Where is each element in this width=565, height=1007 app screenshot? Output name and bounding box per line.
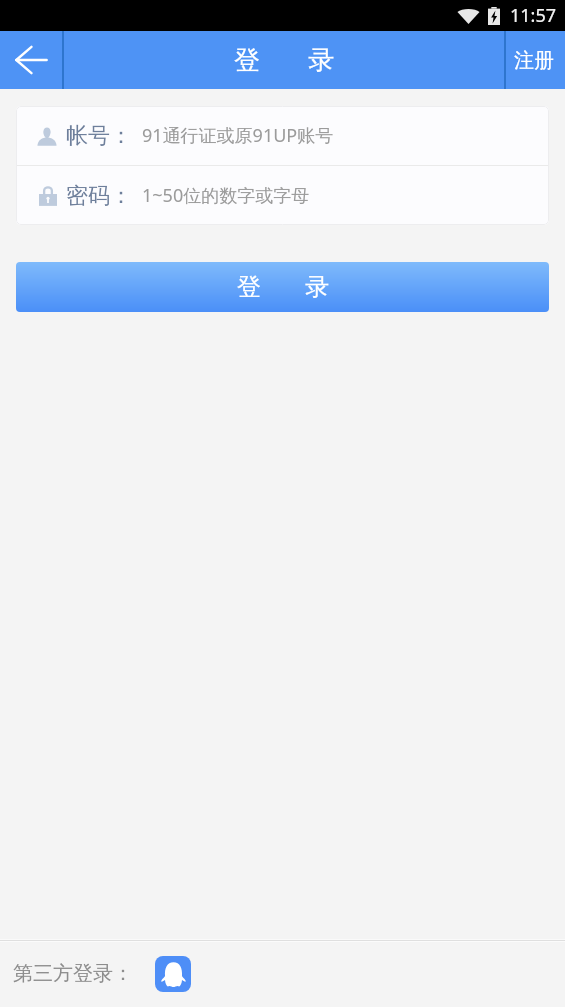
staticText: 密码： [66, 182, 132, 210]
staticText: 91通行证或原91UP账号 [142, 123, 334, 148]
staticText: 注册 [514, 48, 554, 73]
button[interactable]: QQ login [155, 956, 191, 992]
staticText: 录 [308, 44, 334, 77]
button[interactable]: 帐号： [16, 106, 549, 165]
staticText: 登 [234, 44, 260, 77]
button[interactable]: Back [0, 31, 62, 89]
button[interactable]: 登 [16, 262, 549, 312]
staticText: 帐号： [66, 122, 132, 150]
staticText: 第三方登录： [13, 961, 133, 986]
staticText: 1~50位的数字或字母 [142, 183, 310, 208]
staticText: 11:57 [510, 3, 557, 28]
button[interactable]: 注册 [506, 31, 565, 89]
staticText: 录 [305, 272, 329, 302]
staticText: 登 [237, 272, 261, 302]
button[interactable]: 密码： [16, 166, 549, 225]
